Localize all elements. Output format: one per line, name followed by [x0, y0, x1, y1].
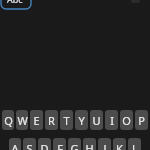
- staticText: F: [57, 141, 63, 150]
- staticText: P: [138, 113, 145, 128]
- staticText: S: [26, 141, 33, 150]
- staticText: A: [11, 141, 19, 150]
- button[interactable]: Abc: [1, 0, 31, 9]
- staticText: L: [132, 141, 138, 150]
- button[interactable]: W: [16, 110, 28, 130]
- staticText: R: [48, 113, 55, 128]
- button[interactable]: Q: [2, 110, 14, 130]
- button[interactable]: E: [30, 110, 43, 130]
- button[interactable]: K: [113, 138, 126, 150]
- button[interactable]: H: [83, 138, 96, 150]
- staticText: K: [116, 141, 123, 150]
- staticText: H: [85, 141, 94, 150]
- button[interactable]: J: [98, 138, 111, 150]
- button[interactable]: D: [38, 138, 51, 150]
- staticText: I: [110, 113, 114, 128]
- button[interactable]: I: [105, 110, 118, 130]
- staticText: Q: [4, 113, 13, 128]
- staticText: Abc: [7, 0, 23, 5]
- staticText: Y: [78, 113, 85, 128]
- staticText: O: [122, 113, 131, 128]
- button[interactable]: T: [60, 110, 73, 130]
- staticText: U: [92, 113, 101, 128]
- staticText: T: [63, 113, 70, 128]
- button[interactable]: U: [90, 110, 103, 130]
- button[interactable]: S: [23, 138, 36, 150]
- staticText: E: [33, 113, 40, 128]
- button[interactable]: O: [120, 110, 133, 130]
- staticText: J: [103, 141, 107, 150]
- staticText: W: [17, 113, 28, 128]
- button[interactable]: Y: [75, 110, 88, 130]
- staticText: D: [40, 141, 49, 150]
- button[interactable]: G: [68, 138, 81, 150]
- button[interactable]: R: [45, 110, 58, 130]
- staticText: G: [70, 141, 79, 150]
- button[interactable]: P: [135, 110, 148, 130]
- button[interactable]: L: [128, 138, 141, 150]
- button[interactable]: A: [9, 138, 21, 150]
- button[interactable]: F: [53, 138, 66, 150]
